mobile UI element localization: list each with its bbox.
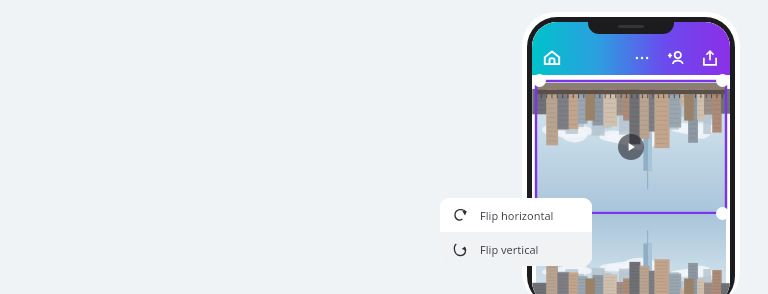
staticText: Flip vertical [480,242,539,257]
button[interactable]: Resize handle bottom right [716,207,729,220]
button[interactable]: Home [540,46,564,70]
button[interactable]: More options [630,46,654,70]
button[interactable]: Play [532,81,730,213]
button[interactable]: Flip vertical [440,232,592,266]
button[interactable]: Resize handle top left [533,74,546,87]
button[interactable]: Share [698,46,722,70]
button[interactable]: Play [618,134,644,160]
staticText: Flip horizontal [480,208,554,223]
button[interactable] [536,214,726,294]
button[interactable]: Add collaborator [664,46,688,70]
button[interactable]: Flip horizontal [440,198,592,232]
button[interactable]: Resize handle top right [716,74,729,87]
